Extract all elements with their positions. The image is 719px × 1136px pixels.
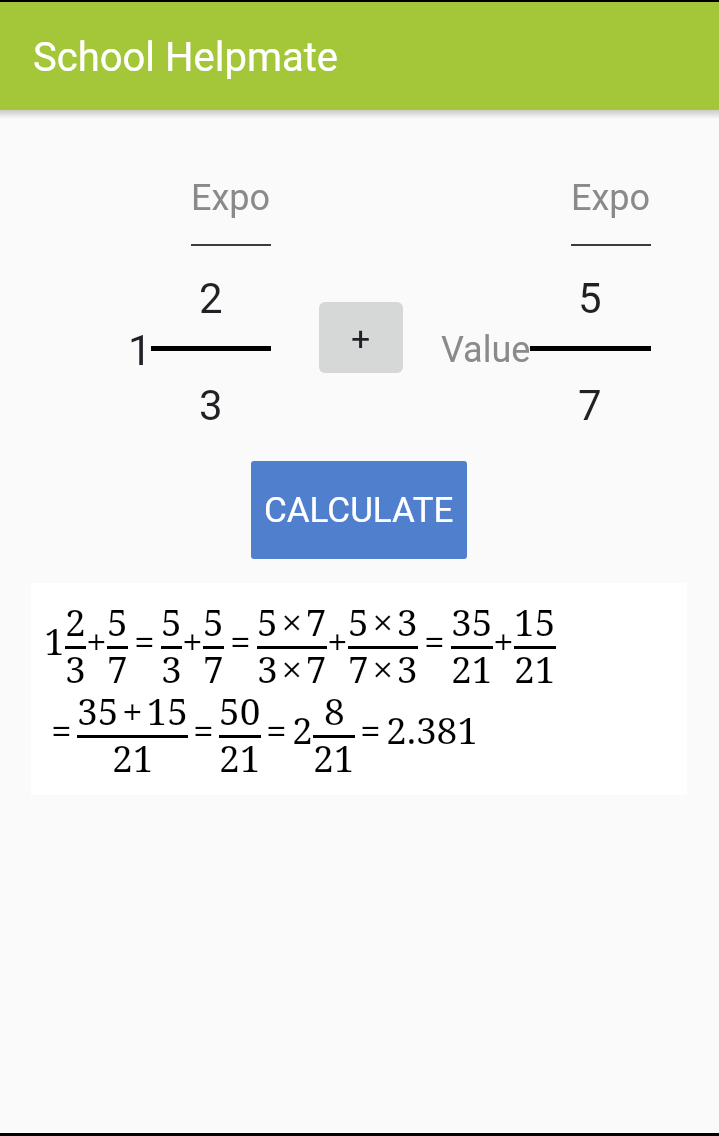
staticText: 7 [107,643,128,686]
button[interactable]: Expo [491,158,719,238]
staticText: 7 × 3 [348,643,418,686]
staticText: + [327,615,348,665]
staticText: 5 [578,274,602,323]
staticText: 15 [514,596,556,646]
staticText: Value [441,329,531,371]
button[interactable]: 3 [91,365,331,445]
staticText: 3 [199,381,223,430]
staticText: 1 [44,615,65,665]
staticText: 50 [219,685,261,735]
staticText: 7 [578,381,602,430]
button[interactable]: Expo [111,158,351,238]
button[interactable]: 1 [110,310,170,390]
staticText: 2 [65,596,86,646]
staticText: = [266,704,287,754]
staticText: 21 [451,643,493,686]
staticText: 3 [161,643,182,686]
staticText: 7 [203,643,224,686]
staticText: 5 × 7 [257,596,327,646]
staticText: CALCULATE [264,490,454,531]
staticText: 1 [128,326,152,375]
staticText: 5 [107,596,128,646]
staticText: Expo [191,177,271,219]
staticText: 35 [451,596,493,646]
staticText: = [230,615,251,665]
staticText: 5 [161,596,182,646]
staticText: 21 [219,732,261,775]
staticText: 21 [514,643,556,686]
staticText: = [134,615,155,665]
staticText: 3 [65,643,86,686]
staticText: School Helpmate [33,34,339,81]
button[interactable]: 7 [470,365,710,445]
staticText: 8 [324,685,345,735]
staticText: 2.381 [386,704,478,754]
staticText: 5 × 3 [348,596,418,646]
staticText: + [493,615,514,665]
button[interactable]: CALCULATE [251,461,467,559]
staticText: 21 [313,732,355,775]
button[interactable]: + [319,302,403,373]
staticText: = [360,704,381,754]
staticText: 35 + 15 [77,685,188,735]
staticText: 2 [292,704,313,754]
button[interactable]: 2 [91,258,331,338]
staticText: Expo [571,177,651,219]
staticText: + [182,615,203,665]
staticText: 21 [112,732,154,775]
staticText: + [351,318,371,358]
staticText: 5 [203,596,224,646]
button[interactable]: 5 [470,258,710,338]
staticText: = [424,615,445,665]
staticText: 3 × 7 [257,643,327,686]
staticText: 2 [199,274,223,323]
staticText: = [193,704,214,754]
staticText: + [86,615,107,665]
staticText: = [51,704,72,754]
